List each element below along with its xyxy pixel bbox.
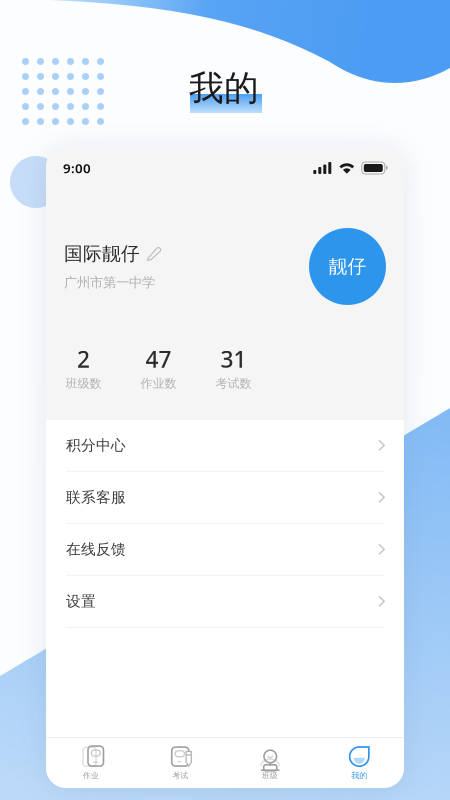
staticText: 47 [145, 344, 171, 374]
button[interactable]: 班级 [225, 738, 314, 788]
button[interactable]: 在线反馈 [46, 524, 404, 576]
staticText: 靓仔 [328, 255, 366, 278]
staticText: 9:00 [63, 159, 91, 177]
staticText: 考试数 [215, 376, 251, 391]
button[interactable]: 考试 [135, 738, 225, 788]
staticText: 在线反馈 [66, 540, 126, 558]
staticText: 设置 [66, 592, 96, 610]
button[interactable]: 我的 [314, 738, 404, 788]
staticText: 联系客服 [66, 488, 126, 506]
button[interactable]: 积分中心 [46, 420, 404, 472]
staticText: 2 [77, 344, 90, 374]
staticText: 31 [220, 344, 246, 374]
staticText: 考试 [172, 771, 188, 780]
button[interactable]: 联系客服 [46, 472, 404, 524]
staticText: 作业数 [140, 376, 176, 391]
staticText: 我的 [189, 67, 259, 110]
button[interactable]: 设置 [46, 576, 404, 628]
staticText: 积分中心 [66, 436, 126, 454]
staticText: 我的 [351, 771, 367, 780]
staticText: 班级 [262, 771, 278, 780]
staticText: 作业 [83, 771, 99, 780]
staticText: 广州市第一中学 [64, 274, 155, 291]
button[interactable]: 作业 [46, 738, 135, 788]
staticText: 国际靓仔 [64, 242, 140, 265]
staticText: 班级数 [65, 376, 101, 391]
